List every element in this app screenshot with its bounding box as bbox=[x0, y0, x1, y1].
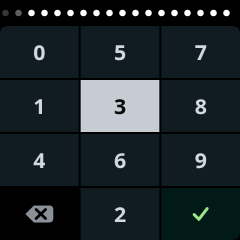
staticText: 0 bbox=[33, 38, 45, 66]
staticText: 4 bbox=[33, 146, 45, 174]
button[interactable]: 7 bbox=[161, 26, 240, 78]
button[interactable]: 9 bbox=[161, 134, 240, 186]
staticText: 2 bbox=[114, 200, 126, 228]
button[interactable]: 1 bbox=[0, 80, 79, 132]
staticText: 1 bbox=[33, 92, 45, 120]
button[interactable]: 0 bbox=[0, 26, 79, 78]
staticText: 7 bbox=[195, 38, 207, 66]
staticText: 8 bbox=[195, 92, 207, 120]
button[interactable]: 5 bbox=[81, 26, 159, 78]
button[interactable]: Confirm bbox=[161, 188, 240, 240]
button[interactable]: 6 bbox=[81, 134, 159, 186]
staticText: 5 bbox=[114, 38, 126, 66]
button[interactable]: 8 bbox=[161, 80, 240, 132]
button[interactable]: 3 bbox=[81, 80, 159, 132]
staticText: 3 bbox=[114, 92, 126, 120]
staticText: 6 bbox=[114, 146, 126, 174]
button[interactable]: 4 bbox=[0, 134, 79, 186]
button[interactable]: 2 bbox=[81, 188, 159, 240]
staticText: 9 bbox=[195, 146, 207, 174]
button[interactable]: Delete bbox=[0, 188, 79, 240]
